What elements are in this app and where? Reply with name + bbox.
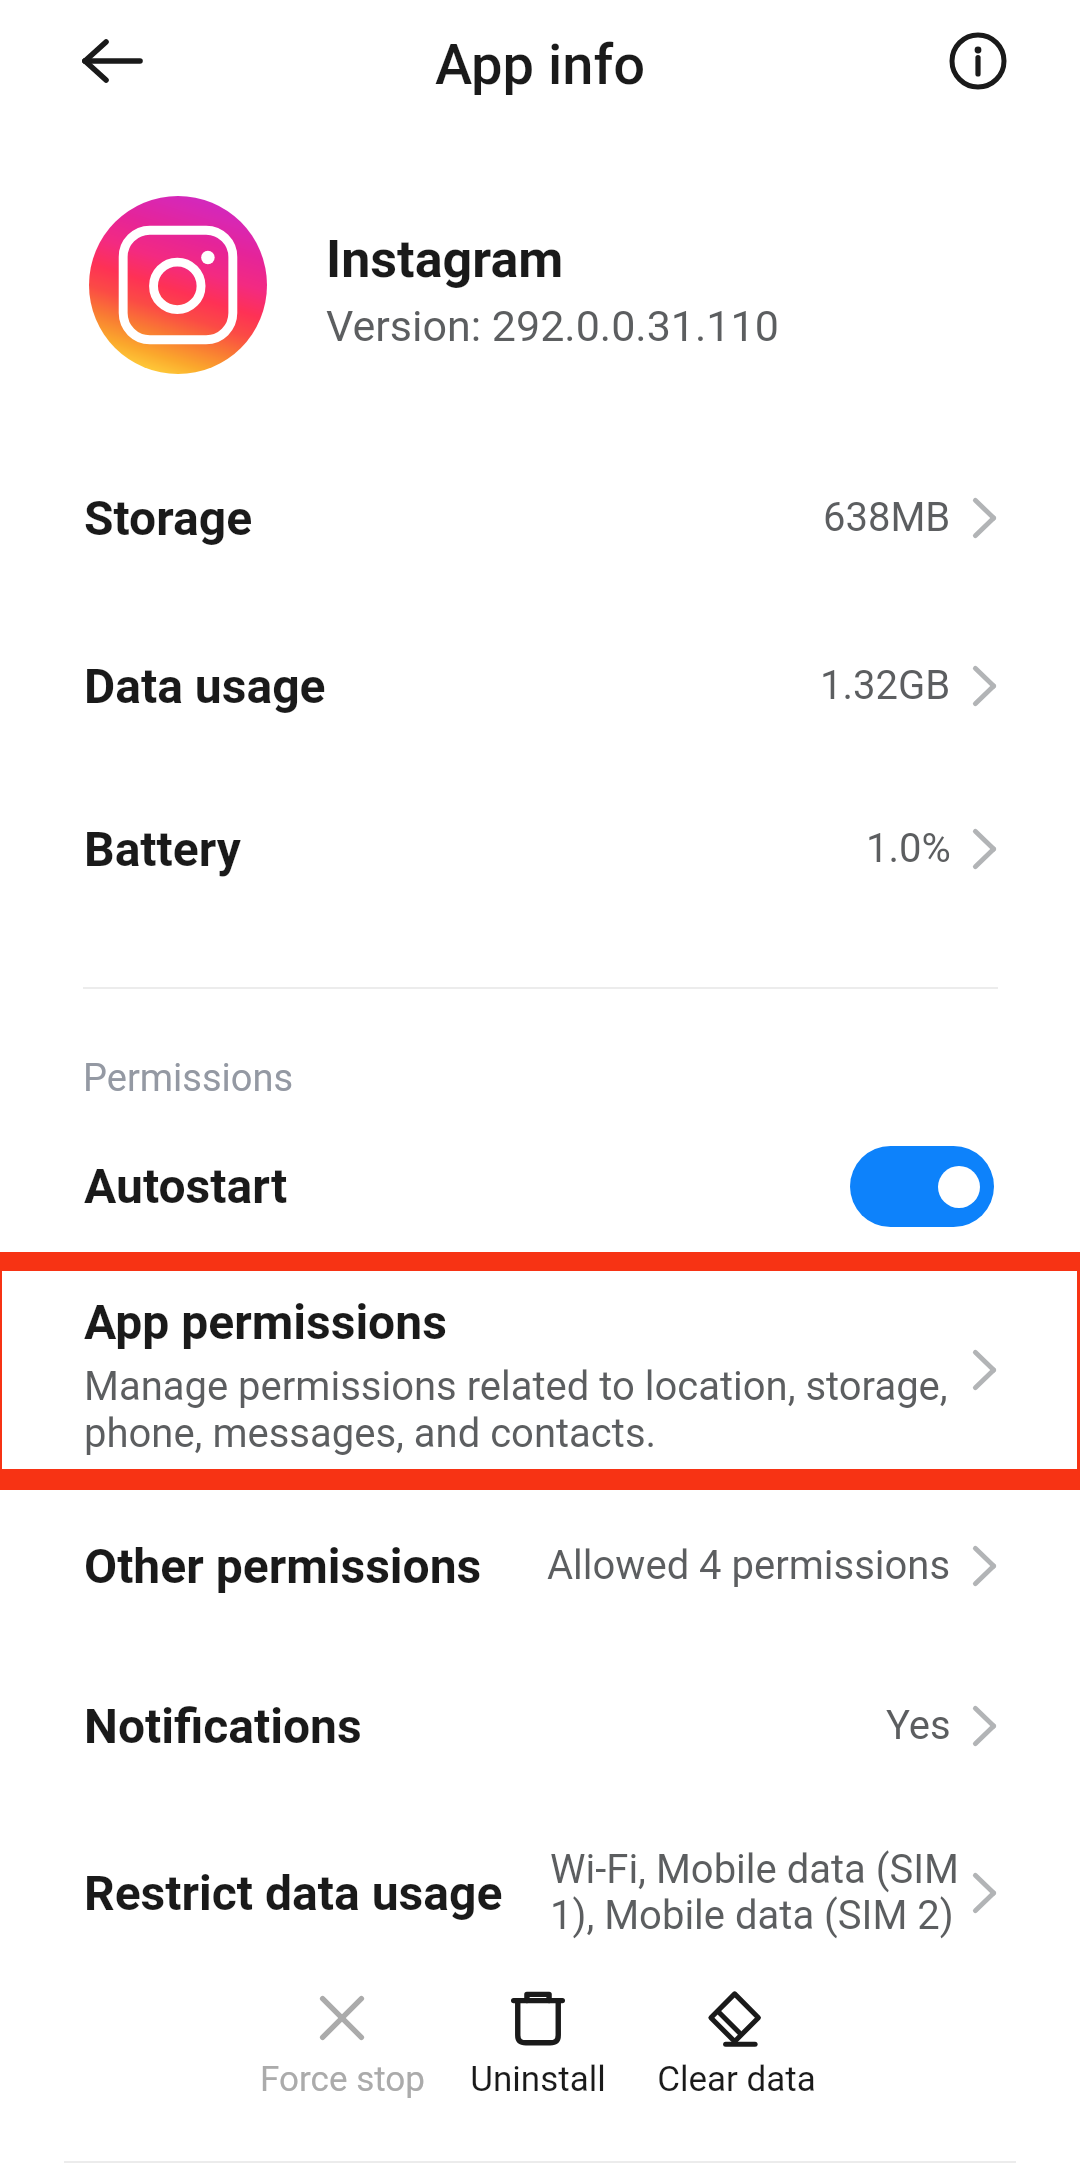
button[interactable]: Back xyxy=(72,21,152,101)
staticText: Instagram xyxy=(326,229,564,290)
staticText: 1.32GB xyxy=(820,662,951,709)
staticText: Notifications xyxy=(84,1698,362,1754)
staticText: 638MB xyxy=(823,494,951,541)
button[interactable]: App permissions xyxy=(2,1271,1077,1469)
button[interactable]: Other permissions xyxy=(0,1483,1080,1648)
button[interactable]: Restrict data usage xyxy=(0,1810,1080,1975)
button[interactable]: Storage xyxy=(0,435,1080,600)
staticText: Clear data xyxy=(657,2059,816,2100)
button[interactable]: Notifications xyxy=(0,1643,1080,1808)
staticText: 1.0% xyxy=(866,825,951,872)
staticText: Allowed 4 permissions xyxy=(547,1542,951,1589)
staticText: App permissions xyxy=(84,1294,447,1350)
button[interactable]: Battery xyxy=(0,766,1080,931)
staticText: Manage permissions related to location, … xyxy=(84,1363,956,1457)
staticText: Battery xyxy=(84,821,241,877)
staticText: Force stop xyxy=(260,2059,425,2100)
staticText: Uninstall xyxy=(470,2059,606,2100)
staticText: Data usage xyxy=(84,658,326,714)
staticText: Version: 292.0.0.31.110 xyxy=(326,301,779,351)
staticText: Storage xyxy=(84,490,253,546)
button[interactable]: Uninstall xyxy=(443,1990,633,2100)
button[interactable]: Clear data xyxy=(641,1990,831,2100)
staticText: Wi-Fi, Mobile data (SIM 1), Mobile data … xyxy=(550,1846,960,1939)
staticText: Autostart xyxy=(84,1158,288,1214)
staticText: Other permissions xyxy=(84,1538,482,1594)
button[interactable]: Autostart toggle, on xyxy=(850,1146,994,1227)
staticText: Yes xyxy=(886,1702,951,1749)
button[interactable]: About this app xyxy=(938,21,1018,101)
staticText: Restrict data usage xyxy=(84,1865,503,1921)
staticText: App info xyxy=(435,32,646,98)
button[interactable]: Force stop xyxy=(247,1990,437,2100)
button[interactable]: Data usage xyxy=(0,603,1080,768)
button[interactable]: Autostart xyxy=(0,1121,1080,1251)
staticText: Permissions xyxy=(83,1056,294,1101)
